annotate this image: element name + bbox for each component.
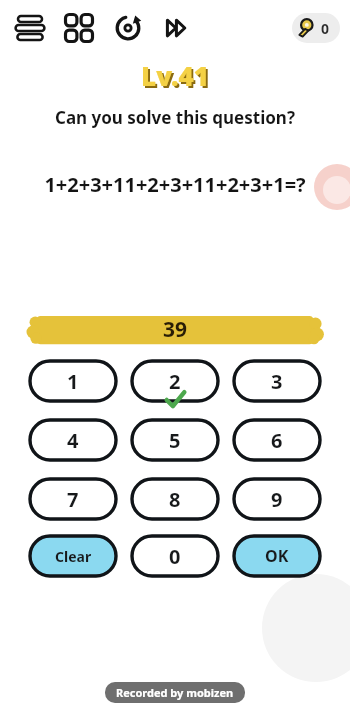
button[interactable]: 0 <box>132 536 218 576</box>
button[interactable]: 6 <box>234 420 320 460</box>
staticText: Can you solve this question? <box>0 106 350 129</box>
staticText: 0 <box>321 19 330 38</box>
button[interactable]: 4 <box>30 420 116 460</box>
button[interactable]: 1 <box>30 361 116 401</box>
button[interactable]: Skip level <box>158 9 196 47</box>
button[interactable]: Keys: 0 <box>292 13 340 43</box>
staticText: 0 <box>169 543 181 570</box>
staticText: 2 <box>169 368 181 395</box>
staticText: 39 <box>163 315 188 344</box>
button[interactable]: 8 <box>132 479 218 519</box>
button[interactable]: Levels <box>60 9 98 47</box>
button[interactable]: 2 <box>132 361 218 401</box>
button[interactable]: Clear <box>30 536 116 576</box>
staticText: Lv.41 <box>143 60 211 95</box>
button[interactable]: 9 <box>234 479 320 519</box>
staticText: Clear <box>55 547 92 566</box>
button[interactable]: Menu <box>11 9 49 47</box>
staticText: 5 <box>169 427 181 454</box>
button[interactable]: OK <box>234 536 320 576</box>
button[interactable]: 7 <box>30 479 116 519</box>
staticText: 3 <box>271 368 283 395</box>
staticText: 6 <box>271 427 283 454</box>
staticText: 8 <box>169 486 181 513</box>
staticText: OK <box>265 545 289 567</box>
staticText: 7 <box>67 486 79 513</box>
staticText: Recorded by mobizen <box>116 685 234 700</box>
button[interactable]: 3 <box>234 361 320 401</box>
button[interactable]: Restart level <box>109 9 147 47</box>
staticText: Lv.41 <box>141 58 209 93</box>
button[interactable]: 5 <box>132 420 218 460</box>
staticText: 1+2+3+11+2+3+11+2+3+1=? <box>0 171 350 198</box>
staticText: 9 <box>271 486 283 513</box>
staticText: 4 <box>67 427 79 454</box>
staticText: 1 <box>67 368 79 395</box>
